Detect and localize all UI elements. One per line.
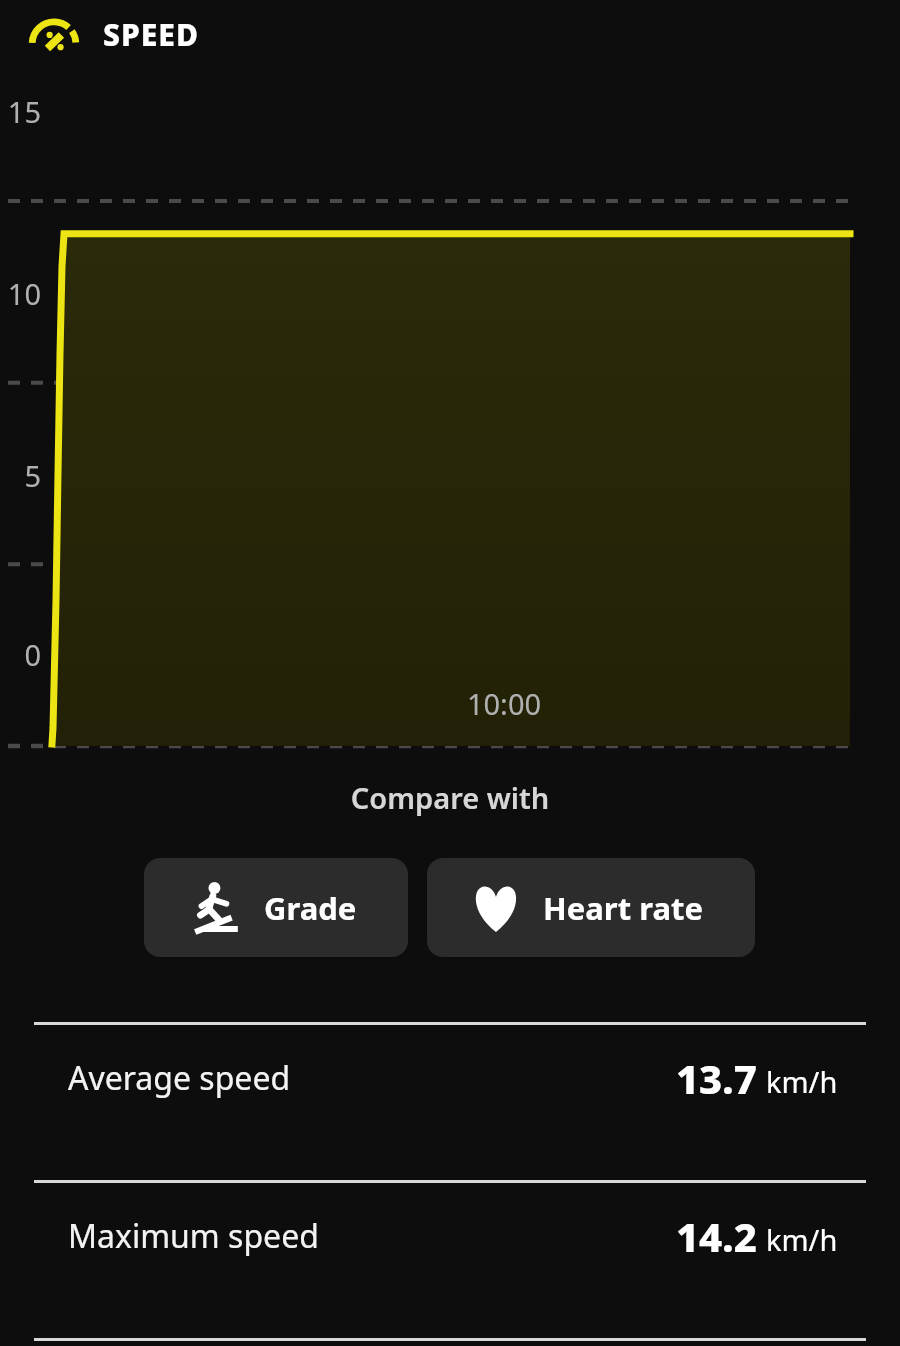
staticText: 0 <box>0 635 41 674</box>
staticText: Heart rate <box>543 887 703 929</box>
staticText: 10 <box>0 274 41 313</box>
staticText: 5 <box>0 456 41 495</box>
other: Speed <box>28 12 80 56</box>
staticText: km/h <box>766 1062 838 1101</box>
staticText: Average speed <box>68 1056 291 1100</box>
button[interactable]: Grade <box>144 858 408 957</box>
staticText: 13.7 <box>676 1051 757 1105</box>
button[interactable]: Heart rate <box>427 858 755 957</box>
staticText: Grade <box>264 887 357 929</box>
staticText: 10:00 <box>54 684 900 723</box>
staticText: 15 <box>0 92 41 131</box>
staticText: SPEED <box>103 14 199 55</box>
button[interactable]: Maximum speed <box>0 1196 900 1276</box>
button[interactable]: Average speed <box>0 1038 900 1118</box>
staticText: Compare with <box>0 778 900 817</box>
staticText: Maximum speed <box>68 1214 319 1258</box>
staticText: 14.2 <box>676 1209 757 1263</box>
staticText: km/h <box>766 1220 838 1259</box>
